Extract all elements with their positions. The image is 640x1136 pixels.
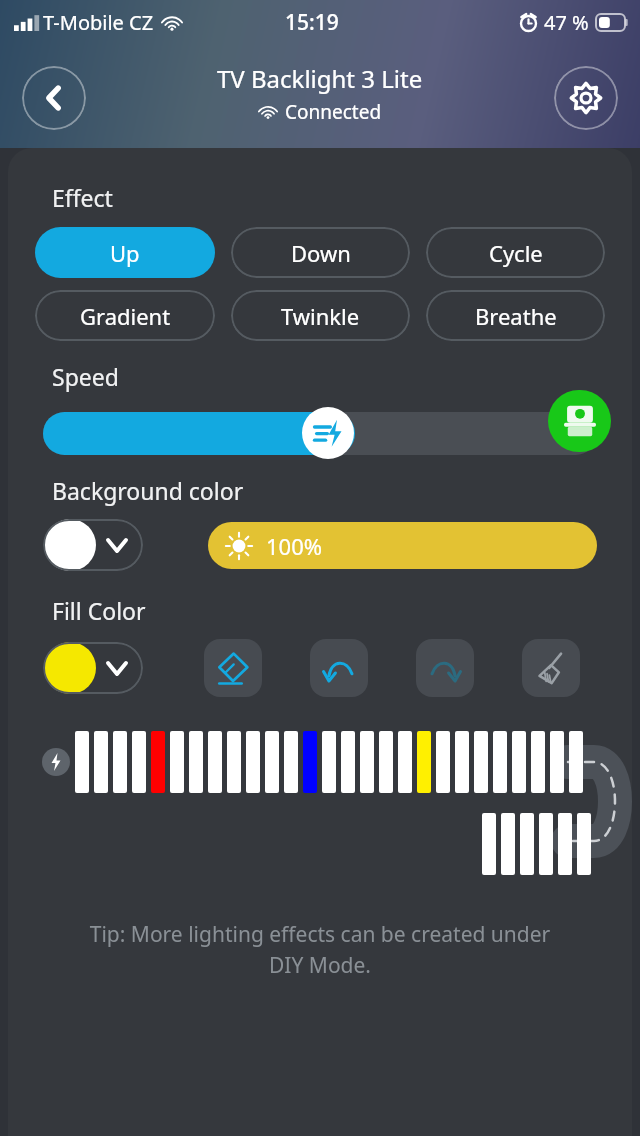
- button[interactable]: Gradient: [35, 290, 215, 341]
- button[interactable]: Redo: [416, 639, 474, 697]
- button[interactable]: Cycle: [426, 227, 605, 278]
- button[interactable]: Settings: [554, 66, 618, 130]
- staticText: Speed: [52, 361, 119, 392]
- staticText: T-Mobile CZ: [43, 9, 154, 36]
- button[interactable]: Pick color with camera: [548, 390, 611, 452]
- staticText: TV Backlight 3 Lite: [217, 62, 423, 95]
- button[interactable]: Down: [231, 227, 410, 278]
- button[interactable]: Speed: [302, 407, 354, 459]
- staticText: Up: [110, 238, 140, 268]
- staticText: Twinkle: [281, 301, 360, 331]
- button[interactable]: Eraser: [204, 639, 262, 697]
- button[interactable]: LED strip preview: [8, 721, 632, 896]
- button[interactable]: Undo: [310, 639, 368, 697]
- button[interactable]: Fill color: [43, 642, 143, 694]
- staticText: 15:19: [285, 8, 339, 37]
- button[interactable]: Twinkle: [231, 290, 410, 341]
- staticText: Connected: [285, 99, 382, 125]
- button[interactable]: Up: [35, 227, 215, 278]
- staticText: Tip: More lighting effects can be create…: [38, 920, 602, 979]
- button[interactable]: Clear all: [522, 639, 580, 697]
- staticText: 100%: [266, 531, 323, 561]
- staticText: Breathe: [475, 301, 557, 331]
- staticText: Background color: [52, 475, 244, 506]
- staticText: Down: [291, 238, 351, 268]
- button[interactable]: Background color: [43, 519, 143, 571]
- staticText: Cycle: [489, 238, 543, 268]
- button[interactable]: 100%: [208, 522, 597, 569]
- staticText: Effect: [52, 182, 113, 213]
- button[interactable]: Breathe: [426, 290, 605, 341]
- button[interactable]: [43, 412, 597, 455]
- staticText: Gradient: [80, 301, 171, 331]
- staticText: 47 %: [544, 9, 589, 36]
- staticText: Fill Color: [52, 595, 146, 626]
- button[interactable]: Back: [22, 66, 86, 130]
